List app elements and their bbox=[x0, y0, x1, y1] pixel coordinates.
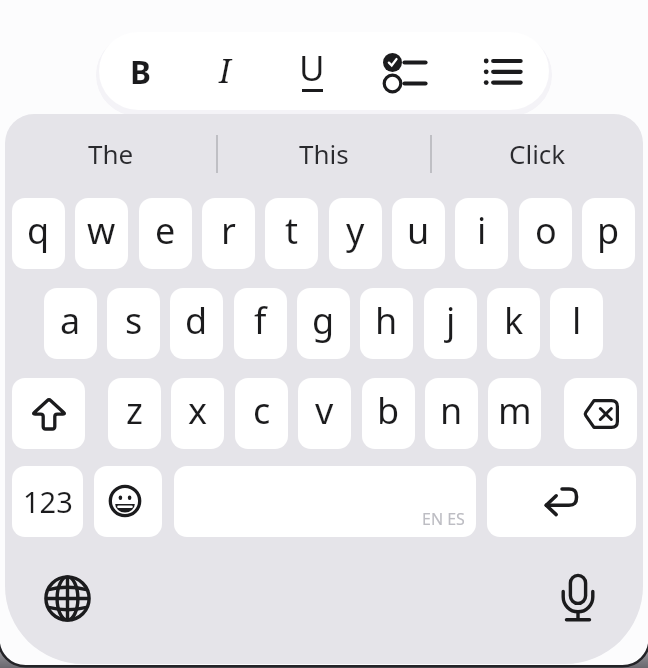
staticText: i bbox=[477, 206, 487, 255]
button[interactable]: q bbox=[12, 198, 65, 269]
staticText: 123 bbox=[23, 482, 73, 521]
staticText: t bbox=[285, 206, 298, 255]
button[interactable]: f bbox=[234, 288, 287, 359]
button[interactable]: d bbox=[170, 288, 223, 359]
button[interactable]: k bbox=[487, 288, 540, 359]
staticText: v bbox=[315, 386, 334, 435]
button[interactable]: j bbox=[424, 288, 477, 359]
staticText: c bbox=[253, 386, 271, 435]
button[interactable]: g bbox=[297, 288, 350, 359]
button[interactable]: Click bbox=[431, 122, 644, 184]
staticText: I bbox=[219, 49, 231, 93]
button[interactable] bbox=[44, 575, 91, 622]
staticText: y bbox=[346, 206, 365, 255]
staticText: q bbox=[27, 206, 50, 255]
staticText: p bbox=[597, 206, 620, 255]
button[interactable]: v bbox=[298, 378, 351, 449]
staticText: z bbox=[126, 386, 143, 435]
button[interactable]: This bbox=[217, 122, 431, 184]
button[interactable] bbox=[482, 50, 526, 94]
button[interactable]: b bbox=[362, 378, 415, 449]
staticText: U bbox=[299, 44, 325, 92]
button[interactable]: l bbox=[550, 288, 603, 359]
staticText: n bbox=[440, 386, 463, 435]
button[interactable]: s bbox=[107, 288, 160, 359]
button[interactable]: The bbox=[5, 122, 217, 184]
button[interactable]: 123 bbox=[12, 466, 83, 537]
staticText: u bbox=[407, 206, 430, 255]
staticText: x bbox=[188, 386, 208, 435]
button[interactable] bbox=[12, 378, 85, 449]
button[interactable] bbox=[564, 378, 637, 449]
staticText: This bbox=[299, 136, 349, 171]
staticText: r bbox=[221, 206, 236, 255]
button[interactable] bbox=[94, 466, 162, 537]
button[interactable]: c bbox=[235, 378, 288, 449]
button[interactable]: U bbox=[284, 40, 340, 96]
button[interactable]: t bbox=[265, 198, 318, 269]
staticText: b bbox=[377, 386, 400, 435]
staticText: d bbox=[185, 296, 208, 345]
button[interactable]: z bbox=[108, 378, 161, 449]
staticText: g bbox=[312, 296, 335, 345]
button[interactable]: h bbox=[360, 288, 413, 359]
button[interactable]: y bbox=[329, 198, 382, 269]
staticText: Click bbox=[509, 136, 566, 171]
button[interactable]: w bbox=[75, 198, 128, 269]
staticText: e bbox=[155, 206, 176, 255]
staticText: h bbox=[375, 296, 398, 345]
button[interactable]: e bbox=[139, 198, 192, 269]
staticText: j bbox=[446, 296, 456, 345]
staticText: s bbox=[125, 296, 143, 345]
button[interactable]: m bbox=[488, 378, 541, 449]
staticText: l bbox=[572, 296, 582, 345]
button[interactable]: r bbox=[202, 198, 255, 269]
staticText: w bbox=[87, 206, 116, 255]
button[interactable]: u bbox=[392, 198, 445, 269]
button[interactable]: i bbox=[455, 198, 508, 269]
button[interactable] bbox=[556, 572, 600, 624]
button[interactable]: p bbox=[582, 198, 635, 269]
staticText: The bbox=[88, 136, 134, 171]
staticText: o bbox=[535, 206, 557, 255]
button[interactable]: a bbox=[44, 288, 97, 359]
button[interactable]: B bbox=[112, 43, 168, 99]
staticText: k bbox=[504, 296, 524, 345]
button[interactable] bbox=[378, 48, 432, 96]
button[interactable]: I bbox=[197, 43, 253, 99]
staticText: B bbox=[130, 50, 151, 93]
staticText: a bbox=[60, 296, 81, 345]
staticText: m bbox=[498, 386, 532, 435]
button[interactable]: EN ES bbox=[174, 466, 476, 537]
staticText: f bbox=[254, 296, 267, 345]
button[interactable]: o bbox=[519, 198, 572, 269]
button[interactable] bbox=[487, 466, 636, 537]
button[interactable]: n bbox=[425, 378, 478, 449]
staticText: EN ES bbox=[422, 508, 465, 530]
button[interactable]: x bbox=[171, 378, 224, 449]
